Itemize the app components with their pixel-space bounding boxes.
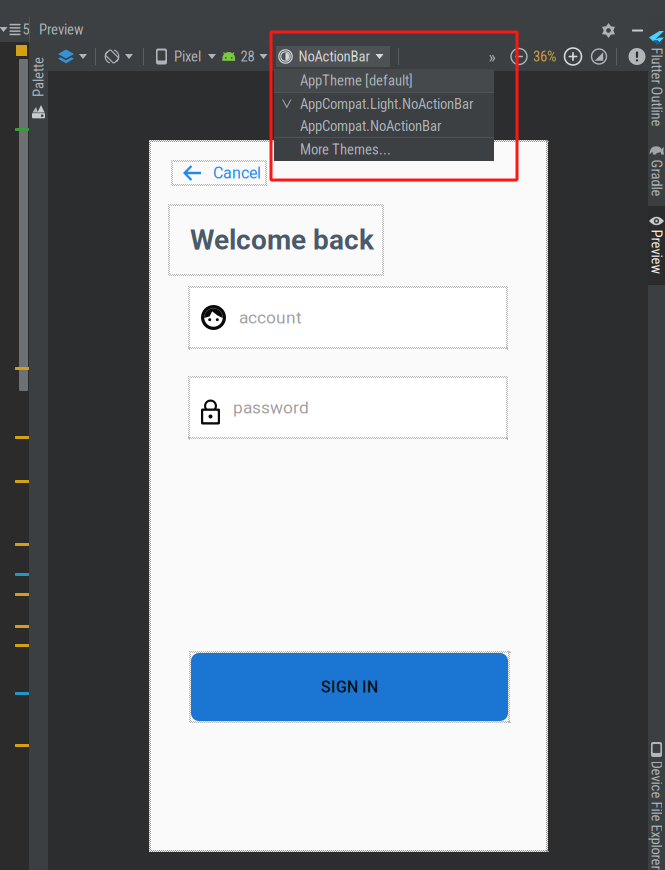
- staticText: More Themes...: [300, 141, 391, 158]
- staticText: AppCompat.Light.NoActionBar: [300, 95, 473, 113]
- staticText: Gradle: [638, 169, 665, 187]
- button[interactable]: Minimize: [630, 23, 645, 38]
- staticText: 36%: [533, 48, 556, 65]
- button[interactable]: Gradle: [648, 137, 665, 206]
- button[interactable]: Cancel: [171, 160, 267, 186]
- button[interactable]: More Themes...: [274, 138, 494, 161]
- button[interactable]: Preview: [648, 206, 665, 285]
- staticText: password: [233, 397, 309, 418]
- staticText: Preview: [634, 243, 665, 261]
- staticText: Cancel: [213, 164, 261, 182]
- button[interactable]: AppCompat.Light.NoActionBar: [274, 93, 494, 115]
- button[interactable]: Pixel: [151, 42, 221, 71]
- staticText: 28: [240, 48, 254, 65]
- button[interactable]: Issues: [626, 42, 648, 71]
- staticText: Flutter Outline: [617, 78, 665, 96]
- staticText: Device File Explorer: [602, 806, 665, 824]
- button[interactable]: Device File Explorer: [648, 732, 665, 870]
- button[interactable]: 28: [217, 42, 272, 71]
- staticText: Palette: [18, 68, 58, 86]
- staticText: AppCompat.NoActionBar: [300, 117, 441, 135]
- button[interactable]: Zoom to fit: [588, 42, 610, 71]
- button[interactable]: Zoom in: [562, 42, 584, 71]
- button[interactable]: Design surface: [53, 42, 92, 71]
- staticText: Welcome back: [190, 224, 374, 256]
- button[interactable]: Palette: [29, 42, 48, 870]
- button[interactable]: Orientation: [99, 42, 138, 71]
- button[interactable]: Zoom out: [508, 42, 530, 71]
- staticText: Preview: [39, 21, 84, 38]
- staticText: account: [239, 307, 302, 328]
- button[interactable]: AppTheme [default]: [274, 69, 494, 92]
- staticText: »: [488, 46, 495, 67]
- button[interactable]: NoActionBar: [276, 46, 390, 67]
- button[interactable]: 5: [0, 17, 29, 42]
- button[interactable]: Flutter Outline: [648, 17, 665, 137]
- staticText: AppTheme [default]: [300, 72, 413, 89]
- button[interactable]: Preview: [30, 17, 665, 42]
- staticText: NoActionBar: [298, 48, 369, 65]
- button[interactable]: AppCompat.NoActionBar: [274, 115, 494, 137]
- staticText: 5: [22, 21, 29, 38]
- staticText: SIGN IN: [321, 678, 378, 696]
- button[interactable]: Settings: [601, 23, 616, 38]
- button[interactable]: SIGN IN: [191, 653, 508, 721]
- button[interactable]: More actions: [481, 42, 503, 71]
- staticText: Pixel: [174, 48, 201, 65]
